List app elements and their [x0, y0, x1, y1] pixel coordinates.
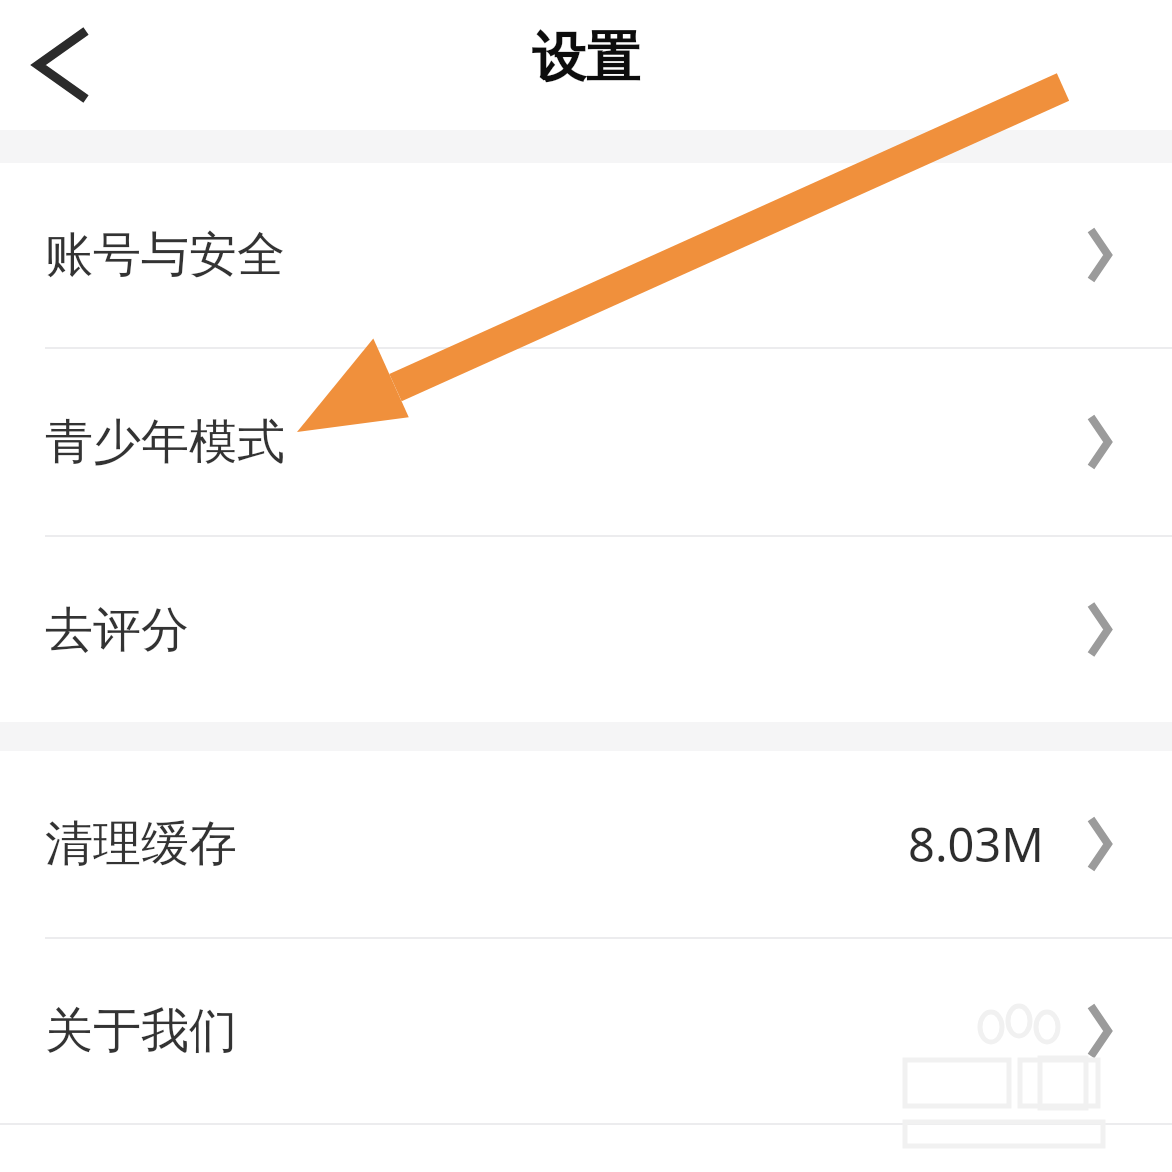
staticText: 关于我们: [45, 1001, 237, 1061]
button[interactable]: 去评分: [0, 537, 1172, 722]
staticText: 设置: [532, 24, 640, 92]
button[interactable]: 清理缓存: [0, 751, 1172, 937]
button[interactable]: Back: [0, 0, 112, 130]
staticText: 8.03M: [908, 812, 1044, 876]
button[interactable]: 青少年模式: [0, 349, 1172, 535]
staticText: 去评分: [45, 600, 189, 660]
staticText: 青少年模式: [45, 412, 285, 472]
button[interactable]: 账号与安全: [0, 163, 1172, 347]
staticText: 清理缓存: [45, 814, 237, 874]
staticText: 账号与安全: [45, 225, 285, 285]
button[interactable]: 关于我们: [0, 939, 1172, 1123]
